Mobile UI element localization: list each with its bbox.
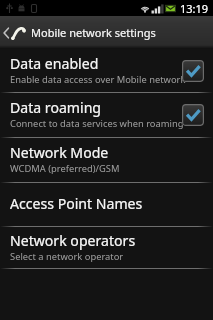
- button[interactable]: Data roaming: [0, 93, 213, 137]
- staticText: Data enabled: [10, 54, 99, 73]
- staticText: Network operators: [10, 231, 136, 250]
- staticText: Network Mode: [10, 143, 109, 162]
- button[interactable]: Data roaming checkbox: [182, 104, 204, 126]
- button[interactable]: Network Mode: [0, 138, 213, 182]
- staticText: Connect to data services when roaming: [10, 117, 184, 130]
- staticText: Mobile network settings: [31, 25, 156, 40]
- button[interactable]: Back to previous screen: [0, 16, 213, 49]
- button[interactable]: Data enabled: [0, 49, 213, 92]
- staticText: Data roaming: [10, 98, 102, 117]
- staticText: Enable data access over Mobile network: [10, 73, 186, 86]
- staticText: Access Point Names: [10, 194, 143, 213]
- staticText: WCDMA (preferred)/GSM: [10, 162, 120, 175]
- button[interactable]: Network operators: [0, 227, 213, 268]
- staticText: 13:19: [180, 1, 209, 16]
- staticText: Select a network operator: [10, 250, 124, 263]
- button[interactable]: Access Point Names: [0, 183, 213, 226]
- button[interactable]: Data enabled checkbox: [182, 60, 204, 82]
